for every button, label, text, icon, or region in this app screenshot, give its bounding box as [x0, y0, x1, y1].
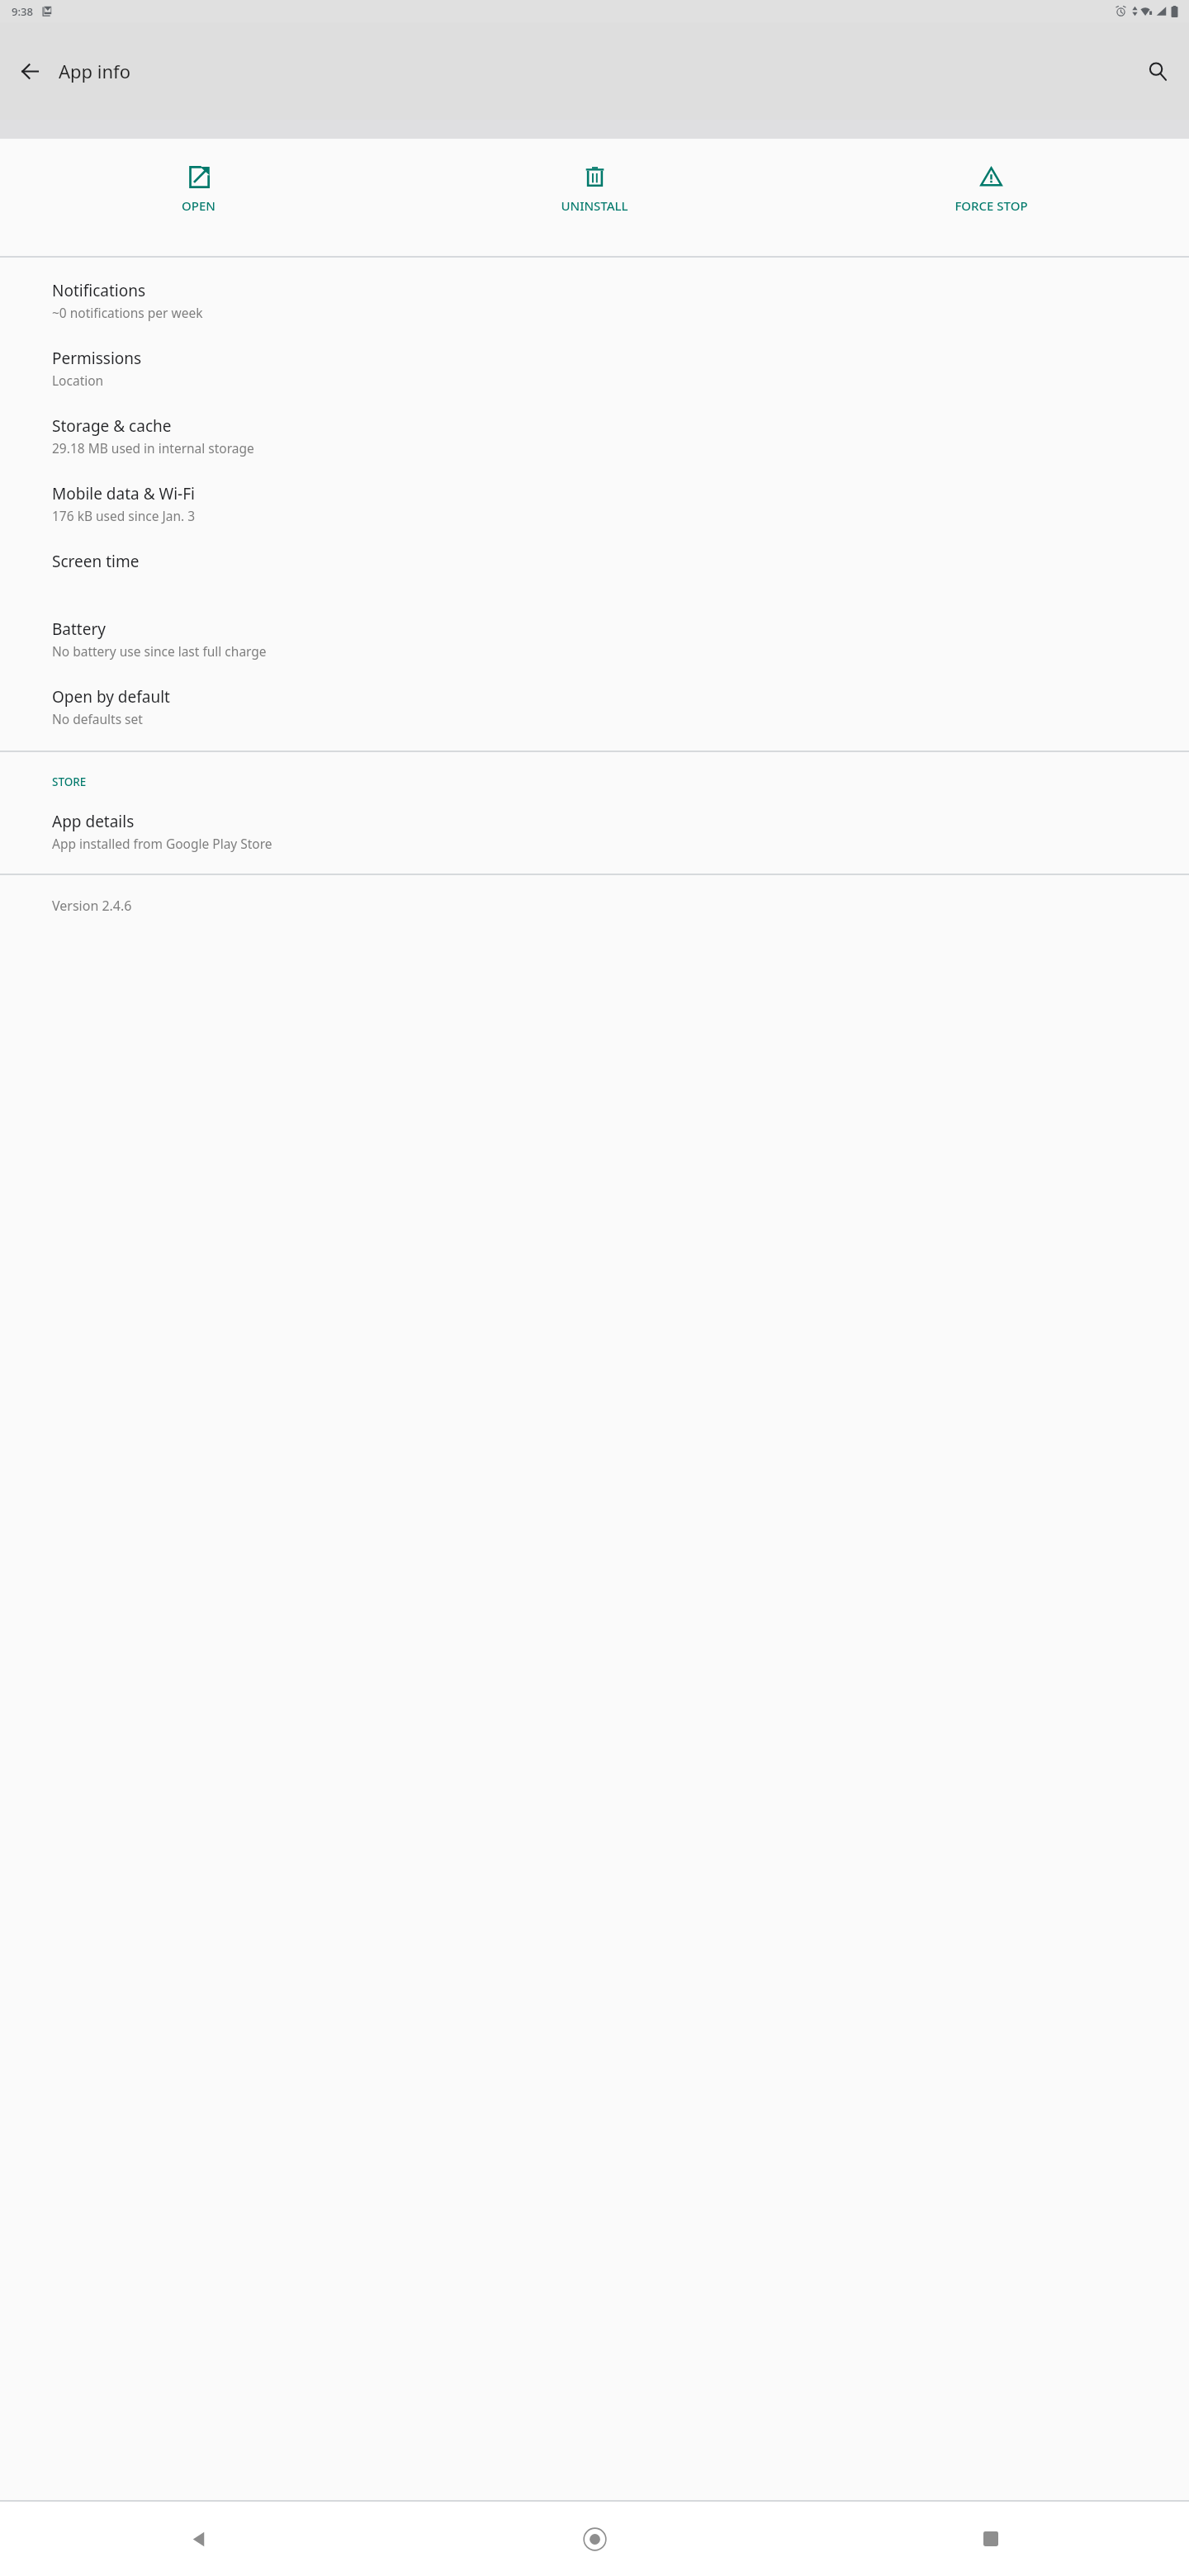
button[interactable]: Permissions	[0, 334, 1189, 402]
button[interactable]: Recent apps	[793, 2502, 1189, 2576]
staticText: Version 2.4.6	[52, 897, 132, 915]
staticText: 176 kB used since Jan. 3	[52, 507, 196, 524]
staticText: App details	[52, 811, 135, 832]
staticText: ~0 notifications per week	[52, 304, 203, 321]
button[interactable]: Home	[396, 2502, 793, 2576]
button[interactable]: App details	[0, 798, 1189, 865]
button[interactable]: Notifications	[0, 267, 1189, 334]
button[interactable]: Mobile data & Wi-Fi	[0, 470, 1189, 537]
staticText: UNINSTALL	[561, 197, 628, 214]
button[interactable]: Open by default	[0, 673, 1189, 741]
button[interactable]: OPEN	[0, 139, 396, 256]
staticText: Storage & cache	[52, 415, 172, 437]
staticText: Screen time	[52, 551, 140, 572]
staticText: 29.18 MB used in internal storage	[52, 439, 254, 457]
button[interactable]: UNINSTALL	[396, 139, 793, 256]
button[interactable]: Battery	[0, 605, 1189, 673]
staticText: Notifications	[52, 280, 146, 301]
button[interactable]: Back	[0, 2502, 396, 2576]
staticText: No battery use since last full charge	[52, 642, 267, 660]
staticText: Battery	[52, 618, 106, 640]
button[interactable]: Storage & cache	[0, 402, 1189, 470]
staticText: No defaults set	[52, 710, 143, 727]
staticText: App info	[59, 59, 130, 83]
staticText: Mobile data & Wi-Fi	[52, 483, 195, 504]
staticText: Open by default	[52, 686, 170, 708]
staticText: 9:38	[12, 4, 33, 19]
staticText: FORCE STOP	[955, 197, 1028, 214]
button[interactable]: Back	[7, 48, 53, 94]
button[interactable]: FORCE STOP	[793, 139, 1189, 256]
staticText: Permissions	[52, 348, 142, 369]
button[interactable]: Screen time	[0, 537, 1189, 605]
staticText: App installed from Google Play Store	[52, 835, 272, 852]
staticText: Location	[52, 372, 104, 389]
button[interactable]: Search	[1135, 48, 1181, 94]
staticText: STORE	[52, 774, 87, 789]
staticText: OPEN	[182, 197, 216, 214]
